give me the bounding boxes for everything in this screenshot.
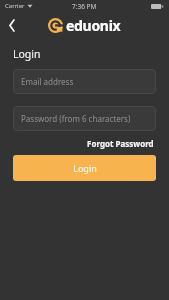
button[interactable]: Back <box>0 13 24 37</box>
staticText: eduonix <box>66 16 121 35</box>
button[interactable]: Password (from 6 characters) <box>13 106 156 131</box>
staticText: Login <box>13 47 41 61</box>
staticText: Password (from 6 characters) <box>21 113 131 124</box>
staticText: Login <box>73 162 97 174</box>
staticText: Email address <box>21 76 74 87</box>
button[interactable]: Login <box>13 155 156 181</box>
staticText: Carrier <box>5 2 25 10</box>
button[interactable]: Email address <box>13 69 156 94</box>
button[interactable]: Forgot Password <box>85 136 156 151</box>
staticText: Forgot Password <box>87 138 154 149</box>
staticText: 7:36 PM <box>72 2 97 11</box>
